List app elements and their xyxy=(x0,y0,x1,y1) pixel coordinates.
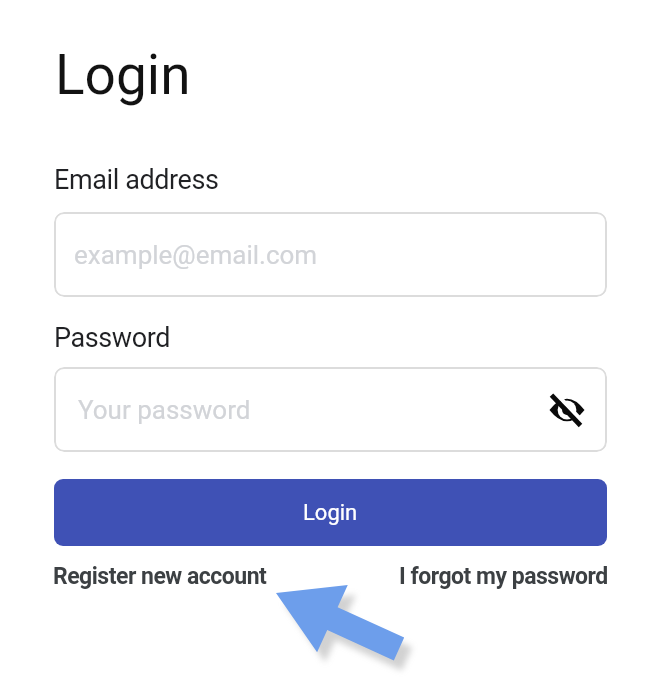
staticText: Your password xyxy=(78,395,251,425)
button[interactable]: example@email.com xyxy=(54,212,607,297)
staticText: Password xyxy=(54,322,171,354)
staticText: Email address xyxy=(54,164,219,196)
button[interactable]: Register new account xyxy=(53,563,267,590)
staticText: Login xyxy=(303,500,358,526)
button[interactable] xyxy=(547,390,587,430)
button[interactable]: Your password xyxy=(54,367,607,452)
staticText: Login xyxy=(55,43,191,107)
staticText: example@email.com xyxy=(74,240,318,270)
button[interactable]: Login xyxy=(54,479,607,546)
button[interactable]: I forgot my password xyxy=(399,563,608,590)
